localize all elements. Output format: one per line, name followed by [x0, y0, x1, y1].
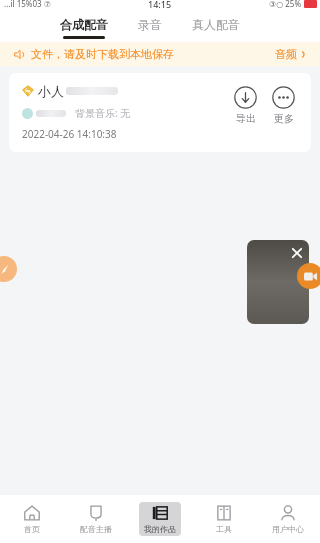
staticText: 录音: [138, 17, 162, 32]
staticText: 首页: [24, 524, 40, 534]
button[interactable]: 首页: [0, 495, 64, 543]
button[interactable]: Video: [297, 263, 320, 289]
button[interactable]: Close: [291, 247, 303, 259]
staticText: 用户中心: [272, 524, 304, 534]
staticText: ③○ 25%: [269, 0, 302, 9]
staticText: 导出: [236, 112, 256, 125]
button[interactable]: Close: [247, 240, 309, 324]
button[interactable]: 小人: [9, 73, 311, 152]
button[interactable]: 我的作品: [128, 495, 192, 543]
staticText: 音频: [275, 47, 297, 61]
staticText: ...il 15%03 ⑦: [4, 0, 51, 9]
staticText: 配音主播: [80, 524, 112, 534]
button[interactable]: 文件，请及时下载到本地保存: [0, 42, 320, 66]
staticText: 14:15: [148, 0, 172, 10]
button[interactable]: 录音: [136, 17, 164, 39]
button[interactable]: 配音主播: [64, 495, 128, 543]
staticText: 真人配音: [192, 17, 240, 32]
button[interactable]: 工具: [192, 495, 256, 543]
staticText: 小人: [38, 83, 64, 99]
staticText: 2022-04-26 14:10:38: [22, 127, 117, 141]
button[interactable]: Export: [232, 84, 259, 127]
staticText: 工具: [216, 524, 232, 534]
staticText: 背景音乐: 无: [75, 106, 131, 120]
button[interactable]: Quick action: [0, 256, 17, 282]
button[interactable]: 用户中心: [256, 495, 320, 543]
button[interactable]: More: [270, 84, 297, 127]
staticText: 更多: [274, 112, 294, 125]
staticText: 合成配音: [60, 17, 108, 32]
button[interactable]: 合成配音: [58, 17, 110, 39]
staticText: 我的作品: [144, 524, 176, 534]
staticText: 文件，请及时下载到本地保存: [31, 47, 174, 61]
button[interactable]: 真人配音: [190, 17, 242, 39]
